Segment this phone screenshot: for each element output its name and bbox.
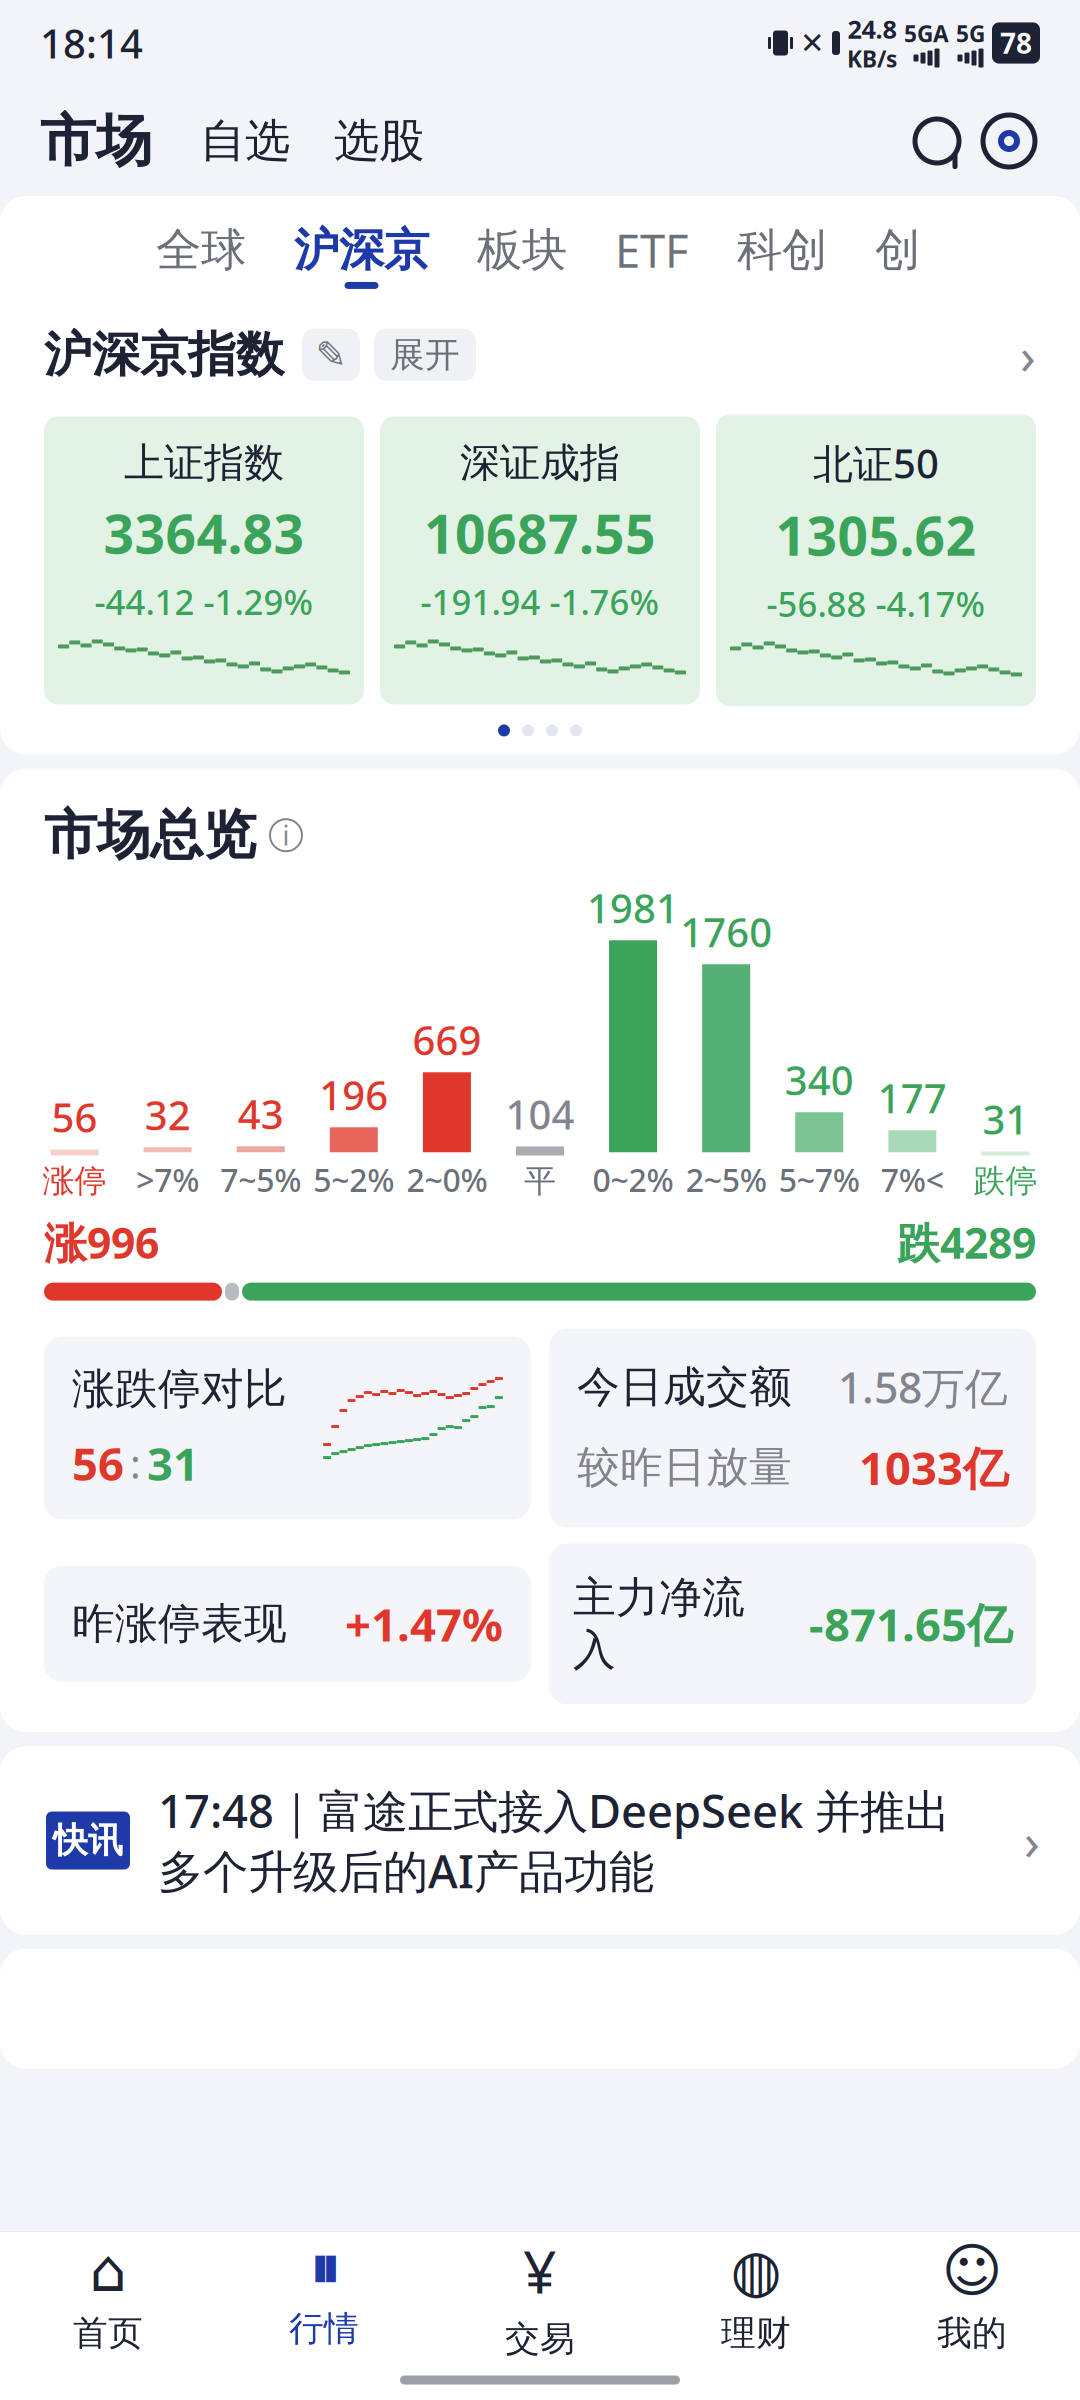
staticText: 3364.83 <box>103 498 304 568</box>
button[interactable]: 选股 <box>290 113 424 169</box>
staticText: 主力净流入 <box>573 1571 745 1676</box>
button[interactable]: 自选 <box>152 113 290 169</box>
staticText: 跌停 <box>973 1161 1037 1201</box>
button[interactable]: ☺ <box>864 2232 1080 2360</box>
staticText: i <box>282 817 289 853</box>
staticText: 板块 <box>477 222 567 278</box>
staticText: 涨996 <box>44 1214 159 1271</box>
staticText: 跌4289 <box>897 1214 1036 1271</box>
button[interactable]: ETF <box>615 220 737 291</box>
staticText: ✎ <box>315 334 346 376</box>
staticText: 选股 <box>334 113 424 169</box>
staticText: 较昨日放量 <box>577 1441 792 1494</box>
button[interactable]: 创 <box>875 222 968 289</box>
button[interactable]: 沪深京 <box>294 222 477 289</box>
staticText: : <box>130 1437 141 1490</box>
button[interactable]: 科创 <box>737 222 875 289</box>
staticText: 104 <box>505 1087 574 1140</box>
staticText: -56.88 -4.17% <box>766 580 985 626</box>
staticText: 56 <box>72 1433 124 1493</box>
button[interactable]: 昨涨停表现 <box>44 1566 531 1682</box>
staticText: +1.47% <box>345 1594 503 1654</box>
button[interactable]: 市场 <box>40 107 152 175</box>
staticText: 展开 <box>390 334 460 376</box>
button[interactable]: 主力净流入 <box>549 1543 1036 1704</box>
button[interactable]: Info <box>270 817 302 853</box>
button[interactable]: ◍ <box>648 2232 864 2360</box>
staticText: 10687.55 <box>424 498 656 568</box>
staticText: 创 <box>875 222 920 278</box>
staticText: 56 <box>51 1090 97 1143</box>
button[interactable]: Search <box>906 110 968 172</box>
staticText: -871.65亿 <box>809 1594 1012 1654</box>
button[interactable]: 沪深京指数 <box>0 307 1080 402</box>
staticText: 5~2% <box>313 1158 394 1201</box>
staticText: 上证指数 <box>124 438 284 488</box>
button[interactable]: ¥ <box>432 2232 648 2360</box>
staticText: 2~5% <box>686 1158 767 1201</box>
button[interactable]: 快讯 <box>0 1746 1080 1935</box>
staticText: 沪深京指数 <box>44 325 284 384</box>
staticText: 理财 <box>721 2312 791 2355</box>
staticText: -191.94 -1.76% <box>420 578 659 624</box>
staticText: 5GA <box>904 18 949 48</box>
staticText: 1981 <box>587 881 679 934</box>
staticText: 1760 <box>680 905 772 958</box>
staticText: ¥ <box>523 2232 557 2310</box>
button[interactable]: 北证50 <box>716 414 1036 706</box>
staticText: 深证成指 <box>460 438 620 488</box>
button[interactable]: ⌂ <box>0 2232 216 2360</box>
staticText: 我的 <box>937 2312 1007 2355</box>
button[interactable]: ⏸ <box>216 2232 432 2360</box>
staticText: 全球 <box>156 222 246 278</box>
staticText: › <box>1020 321 1036 388</box>
staticText: 5G <box>956 18 985 48</box>
button[interactable]: 板块 <box>477 222 615 289</box>
staticText: 196 <box>319 1068 388 1121</box>
staticText: ETF <box>615 220 689 280</box>
staticText: 31 <box>147 1433 199 1493</box>
staticText: 自选 <box>200 113 290 169</box>
staticText: 1033亿 <box>859 1437 1008 1497</box>
staticText: ◍ <box>730 2237 781 2304</box>
staticText: 31 <box>982 1092 1028 1145</box>
staticText: 1305.62 <box>775 500 976 570</box>
staticText: 涨停 <box>42 1161 106 1201</box>
staticText: 669 <box>412 1013 481 1066</box>
button[interactable]: 全球 <box>156 222 294 289</box>
staticText: ☺ <box>941 2237 1002 2304</box>
staticText: 24.8 <box>847 12 896 46</box>
button[interactable]: 深证成指 <box>380 416 700 704</box>
staticText: 7~5% <box>220 1158 301 1201</box>
staticText: 交易 <box>505 2318 575 2360</box>
staticText: 快讯 <box>53 1819 123 1862</box>
staticText: ⌂ <box>89 2237 126 2304</box>
staticText: 177 <box>878 1071 947 1124</box>
staticText: 2~0% <box>406 1158 487 1201</box>
staticText: 0~2% <box>593 1158 674 1201</box>
staticText: 7%< <box>881 1158 944 1201</box>
staticText: 340 <box>785 1053 854 1106</box>
staticText: 市场总览 <box>44 802 256 868</box>
button[interactable]: 今日成交额 <box>549 1329 1036 1527</box>
staticText: 今日成交额 <box>577 1361 792 1413</box>
staticText: 行情 <box>289 2307 359 2350</box>
button[interactable]: Scan <box>968 110 1040 172</box>
button[interactable]: 上证指数 <box>44 416 364 704</box>
staticText: 沪深京 <box>294 222 429 278</box>
staticText: 昨涨停表现 <box>72 1598 287 1650</box>
staticText: 32 <box>145 1088 191 1141</box>
staticText: -44.12 -1.29% <box>94 578 313 624</box>
staticText: 平 <box>524 1161 556 1201</box>
button[interactable]: 涨跌停对比 <box>44 1337 531 1519</box>
staticText: 43 <box>238 1087 284 1140</box>
staticText: 78 <box>1000 24 1032 62</box>
staticText: 涨跌停对比 <box>72 1363 287 1415</box>
staticText: >7% <box>136 1158 199 1201</box>
staticText: 北证50 <box>813 436 939 490</box>
staticText: 17:48｜富途正式接入DeepSeek 并推出多个升级后的AI产品功能 <box>158 1780 950 1901</box>
staticText: 首页 <box>73 2312 143 2355</box>
staticText: 市场 <box>40 107 152 175</box>
staticText: 5~7% <box>779 1158 860 1201</box>
staticText: ✕ <box>800 26 825 60</box>
